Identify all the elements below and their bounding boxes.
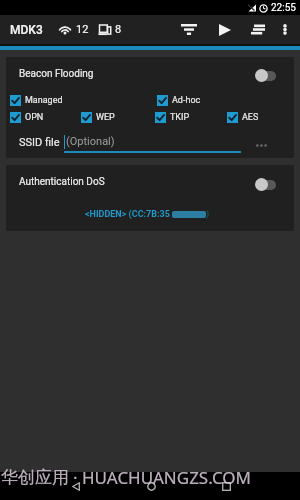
button[interactable]: Recents	[212, 472, 240, 500]
staticText: 22:55	[271, 2, 296, 14]
staticText: Authentication DoS	[19, 176, 105, 188]
staticText: SSID file	[19, 136, 60, 149]
button[interactable]: Toggle Beacon Flooding	[250, 66, 280, 84]
button[interactable]: Filter	[173, 15, 205, 44]
button[interactable]: OPN	[6, 108, 49, 127]
button[interactable]: WEP	[77, 108, 120, 127]
button[interactable]: Back	[62, 472, 90, 500]
button[interactable]: <HIDDEN> (CC:7B:35	[85, 207, 210, 221]
staticText: 8	[115, 23, 122, 36]
button[interactable]: AES	[223, 108, 264, 127]
button[interactable]: Browse SSID file	[249, 137, 273, 153]
staticText: Managed	[25, 95, 63, 106]
staticText: OPN	[25, 112, 44, 123]
button[interactable]: Play	[209, 15, 241, 44]
button[interactable]: Sort	[242, 15, 274, 44]
staticText: (Optional)	[66, 135, 115, 148]
staticText: TKIP	[170, 112, 190, 123]
staticText: Ad-hoc	[172, 95, 201, 106]
button[interactable]: Managed	[6, 91, 68, 110]
staticText: 华创应用	[1, 467, 69, 488]
staticText: AES	[242, 112, 259, 123]
button[interactable]: TKIP	[151, 108, 195, 127]
staticText: <HIDDEN> (CC:7B:35	[85, 209, 170, 220]
staticText: Beacon Flooding	[19, 68, 94, 80]
staticText: 12	[76, 23, 89, 36]
button[interactable]: Home	[137, 472, 165, 500]
staticText: MDK3	[10, 23, 43, 37]
staticText: HUACHUANGZS.COM	[82, 466, 251, 489]
button[interactable]: More options	[274, 15, 296, 44]
button[interactable]: SSID file input	[64, 135, 241, 153]
button[interactable]: Ad-hoc	[153, 91, 206, 110]
staticText: )	[206, 209, 210, 220]
button[interactable]: Toggle Authentication DoS	[250, 175, 280, 193]
staticText: ·	[73, 466, 78, 489]
staticText: WEP	[96, 112, 115, 123]
